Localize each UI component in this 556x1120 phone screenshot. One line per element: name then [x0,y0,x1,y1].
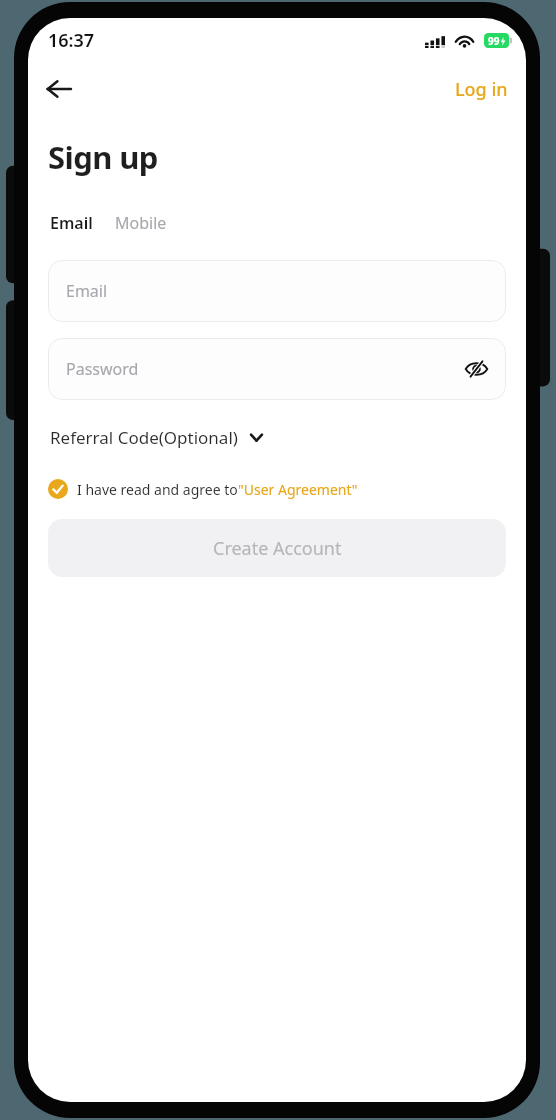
button[interactable]: Email [48,260,506,322]
button[interactable]: Log in [447,71,516,108]
staticText: Email [66,280,108,302]
staticText: 99 [488,34,500,48]
button[interactable]: Password [48,338,506,400]
staticText: Password [66,358,139,380]
button[interactable]: Email [48,208,95,238]
button[interactable]: Mobile [113,208,169,238]
button[interactable]: Referral Code(Optional) [48,420,265,455]
button[interactable]: Show password [456,349,496,389]
button[interactable]: Back [36,66,82,112]
staticText: "User Agreement" [238,480,358,499]
staticText: Sign up [48,136,158,178]
button[interactable]: Create Account [48,519,506,577]
staticText: 16:37 [48,28,95,53]
staticText: Referral Code(Optional) [50,426,238,449]
staticText: Create Account [213,536,342,561]
staticText: I have read and agree to [77,480,238,499]
button[interactable]: I have read and agree to [48,477,506,501]
staticText: Mobile [115,212,167,234]
staticText: Log in [455,77,508,102]
staticText: Email [50,212,93,234]
